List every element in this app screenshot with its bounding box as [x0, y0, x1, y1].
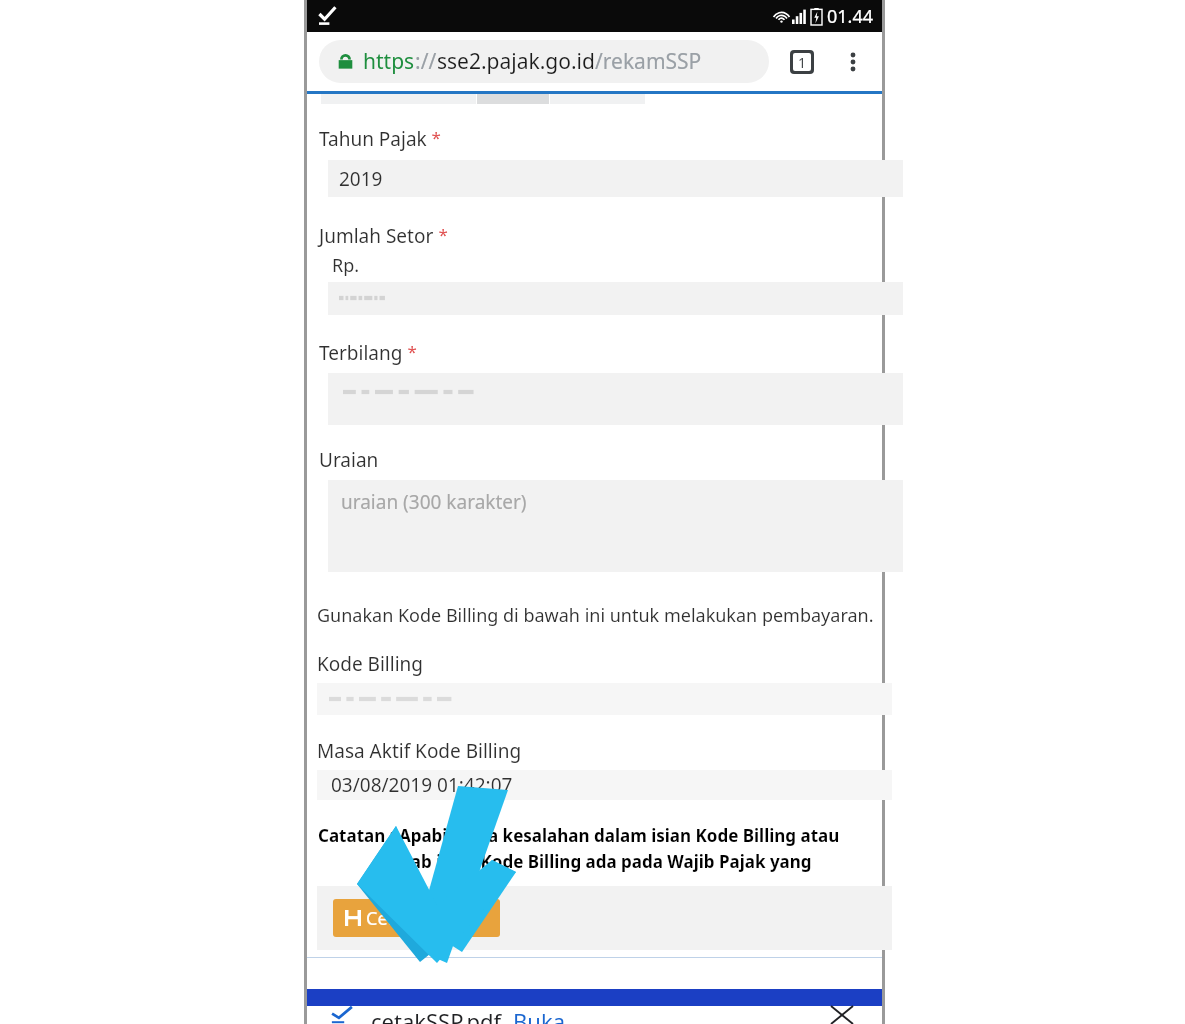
staticText: cetakSSP.pdf. [371, 1006, 507, 1024]
button[interactable] [317, 683, 892, 715]
button[interactable]: cetakSSP.pdf. [317, 1006, 565, 1024]
staticText: https [363, 47, 415, 76]
staticText: jawab isian Kode Billing ada pada Wajib … [381, 850, 882, 873]
staticText: Catatan : Apabila ada kesalahan dalam is… [318, 824, 882, 847]
button[interactable]: uraian (300 karakter) [328, 480, 903, 572]
staticText: uraian (300 karakter) [341, 489, 527, 515]
button[interactable]: 2019 [328, 160, 903, 197]
staticText: Masa Aktif Kode Billing [317, 738, 522, 764]
button[interactable]: Close [820, 1006, 864, 1024]
staticText: * [434, 223, 448, 246]
staticText: Gunakan Kode Billing di bawah ini untuk … [317, 603, 874, 628]
staticText: Terbilang [319, 340, 403, 366]
staticText: Uraian [319, 447, 379, 473]
staticText: 1 [798, 53, 807, 71]
staticText: 01.44 [827, 4, 874, 29]
button[interactable]: Tabs [780, 40, 824, 84]
staticText: :// [415, 47, 437, 76]
button[interactable]: Cetak Kode Billing › [333, 899, 500, 937]
staticText: 2019 [339, 166, 383, 192]
staticText: Cetak Kode Billing › [366, 906, 500, 931]
button[interactable]: 03/08/2019 01:42:07 [317, 770, 892, 800]
staticText: * [427, 126, 441, 149]
staticText: 03/08/2019 01:42:07 [331, 772, 513, 798]
staticText: Jumlah Setor [319, 223, 434, 249]
staticText: * [403, 340, 417, 363]
staticText: Tahun Pajak [319, 126, 427, 152]
button[interactable] [328, 373, 903, 425]
staticText: sse2.pajak.go.id [437, 47, 595, 76]
staticText: Rp. [332, 253, 360, 278]
staticText: Buka [513, 1006, 565, 1024]
button[interactable]: https [319, 40, 769, 83]
button[interactable]: More options [831, 40, 875, 84]
staticText: /rekamSSP [595, 47, 702, 76]
staticText: Kode Billing [317, 651, 423, 677]
